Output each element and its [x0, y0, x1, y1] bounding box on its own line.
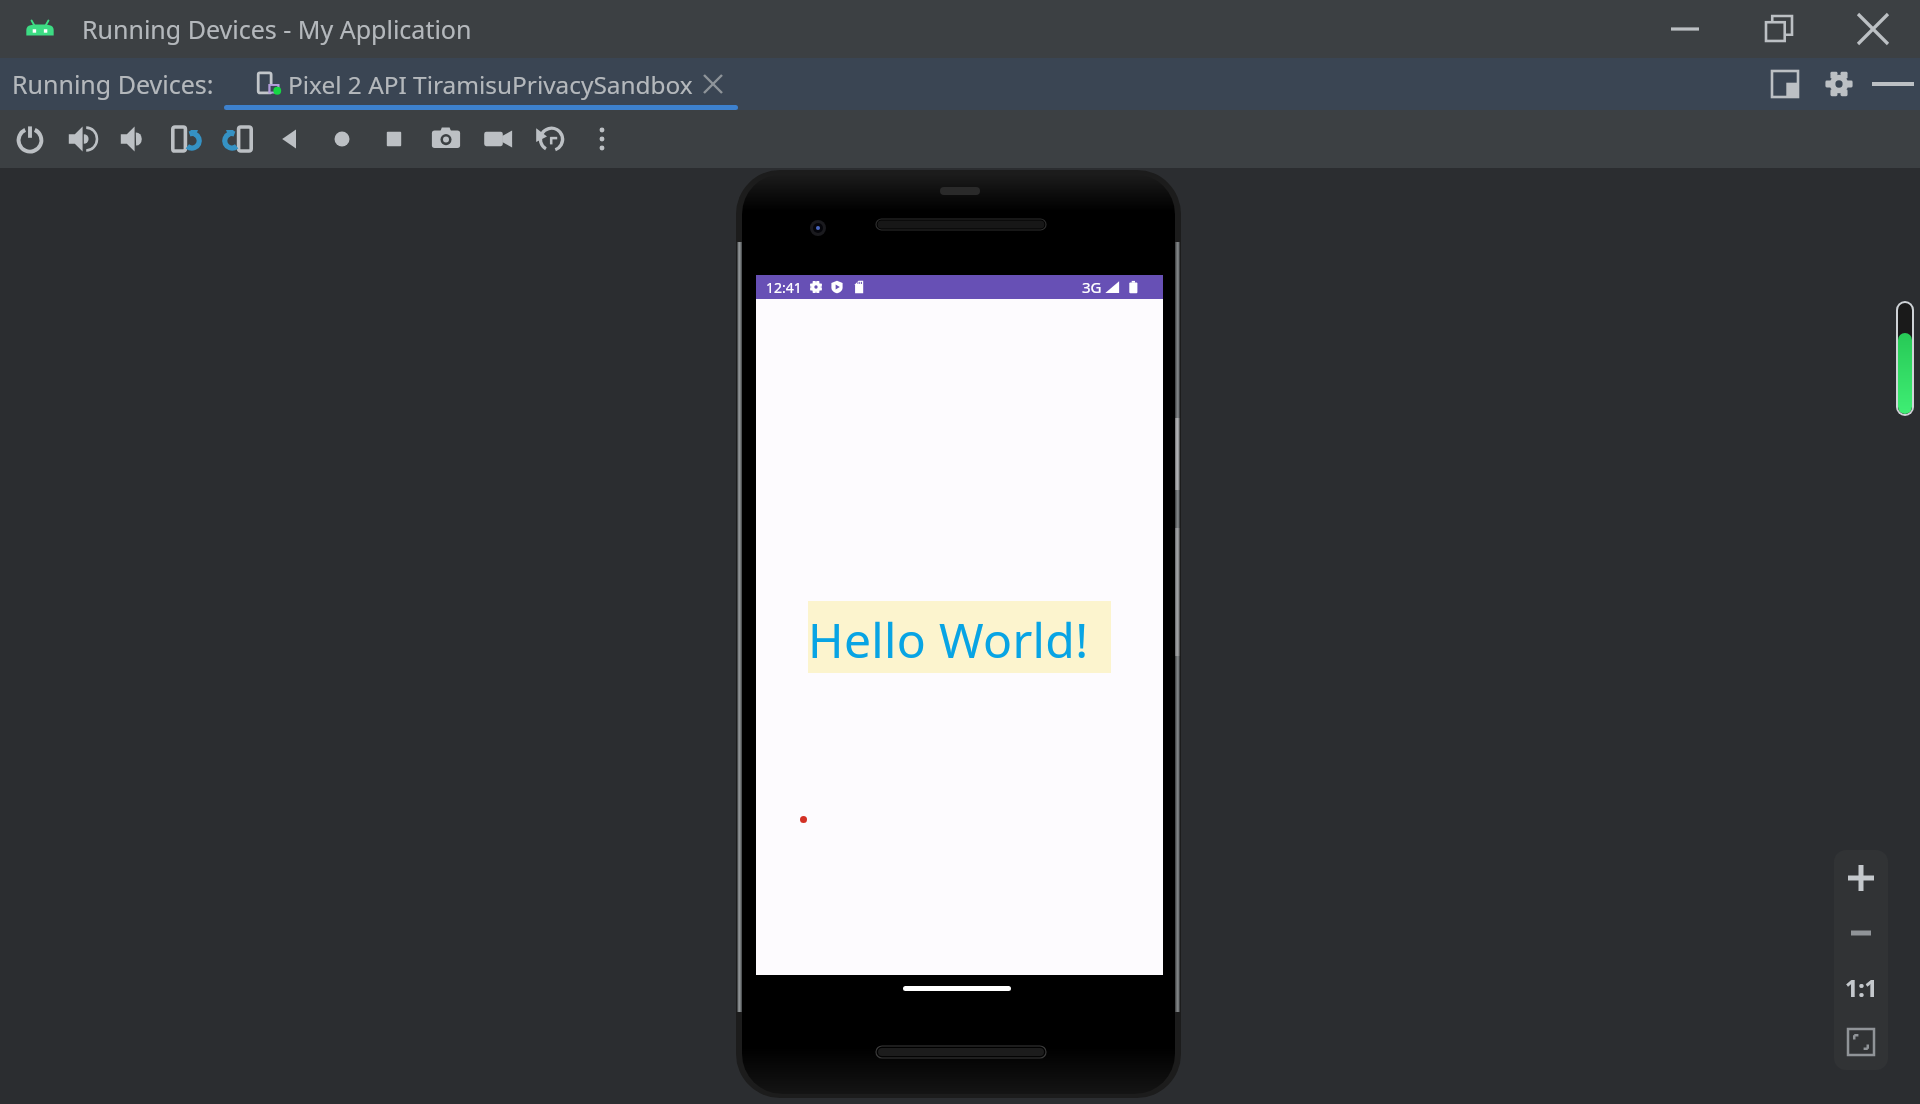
button[interactable]: Rotate left: [160, 110, 212, 168]
button[interactable]: Overview: [368, 110, 420, 168]
staticText: Running Devices - My Application: [82, 12, 472, 46]
button[interactable]: Settings: [1812, 58, 1865, 110]
button[interactable]: Volume down: [108, 110, 160, 168]
button[interactable]: 1:1: [1834, 960, 1888, 1014]
button[interactable]: Power: [4, 110, 56, 168]
button[interactable]: Fit to screen: [1834, 1015, 1888, 1069]
staticText: 3G: [1082, 277, 1102, 297]
button[interactable]: Zoom in: [1834, 851, 1888, 905]
button[interactable]: Screenshot: [420, 110, 472, 168]
staticText: Pixel 2 API TiramisuPrivacySandbox: [288, 68, 693, 101]
staticText: Hello World!: [808, 607, 1089, 672]
button[interactable]: Restore: [1732, 0, 1826, 58]
button[interactable]: Hide: [1865, 58, 1920, 110]
button[interactable]: Home: [316, 110, 368, 168]
button[interactable]: Close: [1826, 0, 1920, 58]
button[interactable]: More: [576, 110, 628, 168]
button[interactable]: Back: [264, 110, 316, 168]
button[interactable]: Volume up: [56, 110, 108, 168]
button[interactable]: Record screen: [472, 110, 524, 168]
staticText: 12:41: [766, 278, 802, 297]
button[interactable]: Split view: [1757, 58, 1812, 110]
button[interactable]: Pixel 2 API TiramisuPrivacySandbox: [256, 58, 730, 110]
staticText: Running Devices:: [12, 67, 214, 101]
staticText: 1:1: [1845, 972, 1878, 1003]
button[interactable]: Zoom out: [1834, 906, 1888, 960]
button[interactable]: Close tab: [696, 67, 730, 101]
button[interactable]: Snapshot: [524, 110, 576, 168]
button[interactable]: Rotate right: [212, 110, 264, 168]
button[interactable]: Minimize: [1638, 0, 1732, 58]
